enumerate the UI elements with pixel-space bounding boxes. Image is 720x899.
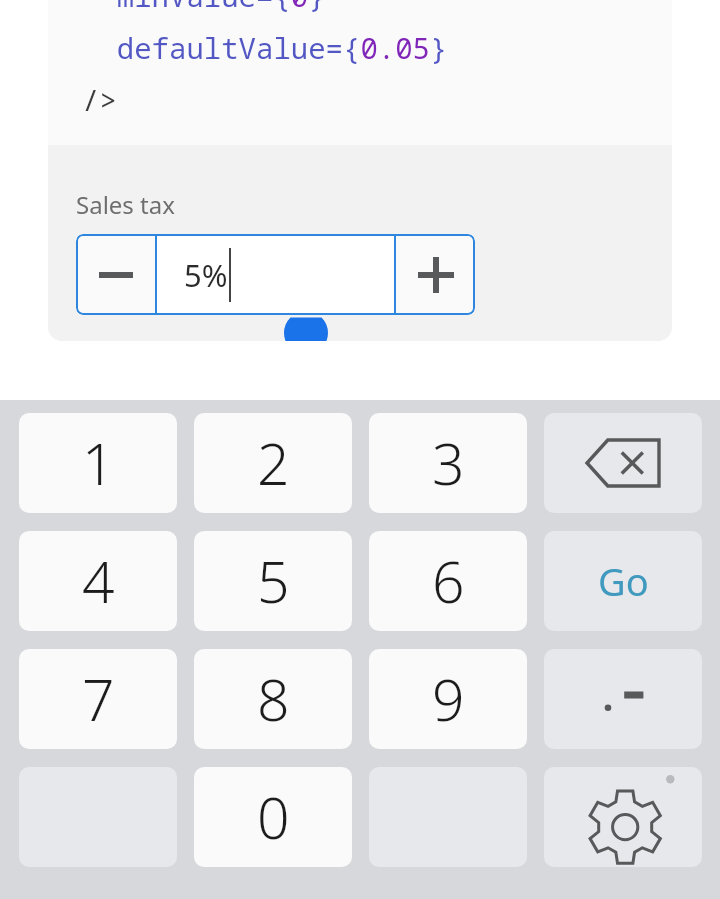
button[interactable]: Period and dash	[544, 649, 702, 749]
button[interactable]: Go	[544, 531, 702, 631]
staticText: minValue={0}	[82, 0, 326, 15]
button[interactable]: 7	[19, 649, 177, 749]
staticText: Go	[598, 555, 649, 607]
button[interactable]: Increase sales tax	[396, 234, 475, 315]
other: Period and dash	[593, 679, 653, 719]
button[interactable]: 5	[194, 531, 352, 631]
staticText: defaultValue={0.05}	[82, 28, 448, 67]
staticText: Sales tax	[76, 188, 175, 221]
button[interactable]: 1	[19, 413, 177, 513]
staticText: 6	[432, 542, 465, 620]
button[interactable]: 2	[194, 413, 352, 513]
staticText: />	[82, 80, 117, 119]
staticText: 4	[82, 542, 115, 620]
staticText: 2	[257, 424, 290, 502]
button[interactable]: 9	[369, 649, 527, 749]
button[interactable]: 3	[369, 413, 527, 513]
other: Backspace	[585, 438, 661, 488]
staticText: 5	[257, 542, 290, 620]
button[interactable]: 0	[194, 767, 352, 867]
button[interactable]: 6	[369, 531, 527, 631]
button[interactable]: Backspace	[544, 413, 702, 513]
staticText: 7	[82, 660, 115, 738]
button[interactable]: 5%	[157, 234, 394, 315]
other: Settings	[568, 775, 678, 859]
staticText: 5%	[184, 254, 228, 296]
staticText: 9	[432, 660, 465, 738]
button[interactable]: Settings	[544, 767, 702, 867]
staticText: 8	[257, 660, 290, 738]
staticText: 3	[432, 424, 465, 502]
staticText: 1	[82, 424, 115, 502]
button[interactable]: Decrease sales tax	[76, 234, 155, 315]
button[interactable]: 8	[194, 649, 352, 749]
staticText: 0	[257, 778, 290, 856]
button[interactable]: 4	[19, 531, 177, 631]
